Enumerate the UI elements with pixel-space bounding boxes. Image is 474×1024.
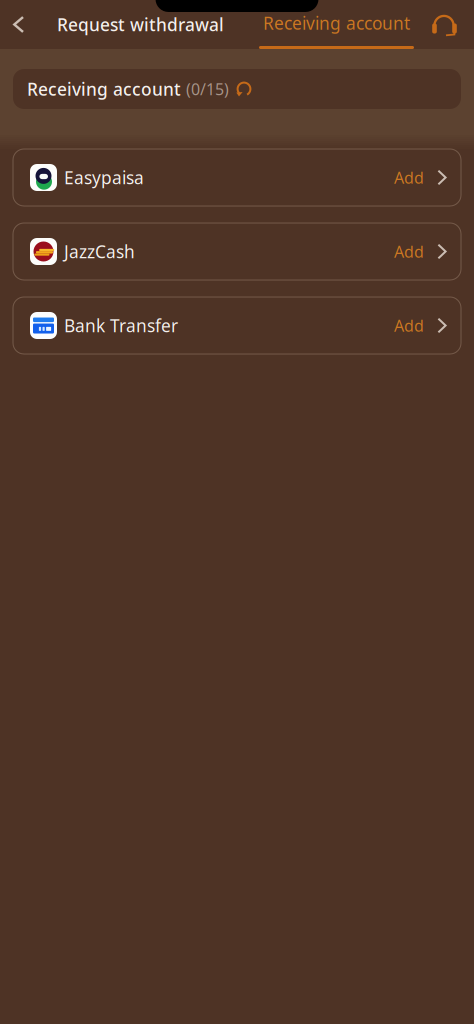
staticText: JazzCash bbox=[64, 240, 135, 263]
staticText: Bank Transfer bbox=[64, 314, 178, 337]
button[interactable]: JazzCash bbox=[13, 223, 461, 280]
staticText: Request withdrawal bbox=[57, 13, 224, 36]
staticText: Add bbox=[394, 241, 424, 262]
staticText: Easypaisa bbox=[64, 166, 144, 189]
staticText: Receiving account bbox=[263, 11, 410, 34]
button[interactable]: Customer support bbox=[416, 0, 474, 49]
staticText: (0/15) bbox=[186, 78, 229, 100]
button[interactable]: Back bbox=[0, 0, 37, 49]
staticText: Add bbox=[394, 315, 424, 336]
button[interactable]: Easypaisa bbox=[13, 149, 461, 206]
button[interactable]: Request withdrawal bbox=[37, 0, 234, 49]
staticText: Add bbox=[394, 167, 424, 188]
button[interactable]: Bank Transfer bbox=[13, 297, 461, 354]
button[interactable]: Refresh bbox=[230, 74, 258, 104]
button[interactable]: Receiving account bbox=[256, 0, 416, 49]
staticText: Receiving account bbox=[27, 77, 181, 100]
